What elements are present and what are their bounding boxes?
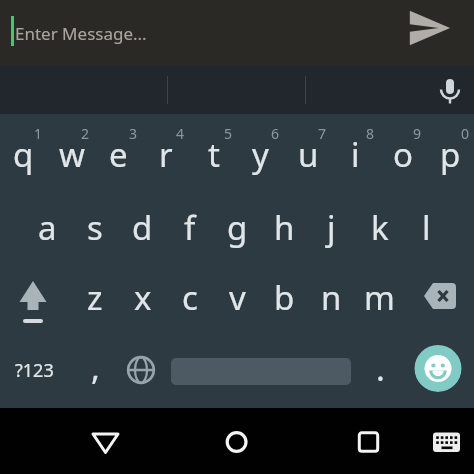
staticText: q [13, 132, 34, 177]
staticText: x [134, 275, 152, 320]
button[interactable]: e [95, 124, 142, 184]
button[interactable] [406, 5, 452, 51]
button[interactable] [420, 276, 460, 316]
button[interactable] [433, 73, 467, 107]
staticText: j [327, 205, 336, 250]
button[interactable]: b [261, 267, 308, 327]
button[interactable]: c [166, 267, 213, 327]
staticText: s [87, 205, 103, 250]
button[interactable]: a [24, 197, 71, 257]
staticText: 0 [461, 124, 470, 143]
button[interactable]: q [0, 124, 47, 184]
staticText: p [440, 132, 461, 177]
staticText: l [422, 205, 431, 250]
button[interactable] [348, 422, 389, 462]
button[interactable]: , [72, 337, 119, 397]
button[interactable] [117, 346, 165, 394]
staticText: 8 [366, 124, 375, 143]
staticText: e [109, 132, 128, 177]
staticText: 6 [271, 124, 280, 143]
staticText: 3 [129, 124, 138, 143]
staticText: n [321, 275, 342, 320]
button[interactable]: s [71, 197, 118, 257]
staticText: w [59, 132, 85, 177]
button[interactable]: t [190, 124, 237, 184]
staticText: a [38, 205, 57, 250]
button[interactable]: u [285, 124, 332, 184]
staticText: t [208, 132, 220, 177]
staticText: . [376, 346, 385, 391]
button[interactable] [85, 423, 126, 463]
button[interactable]: m [356, 267, 403, 327]
button[interactable]: h [261, 197, 308, 257]
button[interactable]: o [379, 124, 426, 184]
staticText: o [393, 132, 413, 177]
button[interactable]: z [71, 267, 118, 327]
button[interactable]: d [119, 197, 166, 257]
button[interactable]: l [403, 197, 450, 257]
button[interactable]: i [332, 124, 379, 184]
staticText: u [298, 132, 319, 177]
button[interactable]: ?123 [4, 340, 64, 400]
staticText: 4 [176, 124, 185, 143]
button[interactable] [0, 0, 474, 66]
staticText: b [274, 275, 295, 320]
button[interactable] [426, 422, 466, 462]
button[interactable]: y [237, 124, 284, 184]
staticText: v [229, 275, 246, 320]
staticText: 5 [224, 124, 233, 143]
button[interactable]: j [308, 197, 355, 257]
staticText: f [184, 205, 196, 250]
button[interactable]: g [214, 197, 261, 257]
staticText: h [274, 205, 295, 250]
button[interactable] [414, 344, 462, 392]
staticText: 1 [34, 124, 43, 143]
staticText: z [87, 275, 103, 320]
staticText: y [252, 132, 269, 177]
staticText: k [371, 205, 389, 250]
staticText: d [132, 205, 153, 250]
staticText: 9 [413, 124, 422, 143]
button[interactable]: p [427, 124, 474, 184]
button[interactable]: r [142, 124, 189, 184]
staticText: i [351, 132, 360, 177]
button[interactable] [9, 272, 57, 324]
button[interactable]: n [308, 267, 355, 327]
staticText: r [159, 132, 173, 177]
staticText: , [91, 345, 100, 390]
staticText: c [182, 275, 198, 320]
button[interactable]: w [48, 124, 95, 184]
button[interactable]: k [356, 197, 403, 257]
staticText: g [227, 205, 248, 250]
button[interactable] [216, 422, 257, 462]
staticText: ?123 [15, 358, 54, 383]
button[interactable]: x [119, 267, 166, 327]
button[interactable]: . [357, 338, 404, 398]
button[interactable]: f [166, 197, 213, 257]
staticText: m [364, 275, 395, 320]
staticText: Enter Message... [15, 22, 147, 45]
staticText: 2 [81, 124, 90, 143]
button[interactable]: v [214, 267, 261, 327]
staticText: 7 [318, 124, 327, 143]
